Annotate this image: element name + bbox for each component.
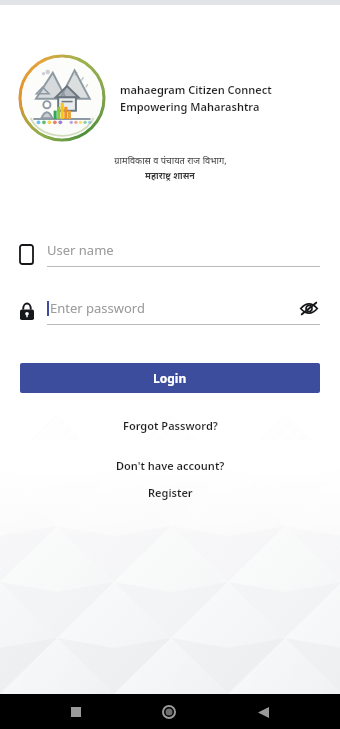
other: Password	[20, 302, 34, 320]
button[interactable]: Login	[20, 363, 320, 393]
button[interactable]: User name	[20, 241, 320, 267]
button[interactable]: Forgot Password?	[111, 414, 230, 437]
button[interactable]: Register	[134, 482, 207, 503]
other: mahaegram logo	[18, 54, 106, 142]
other: User name	[20, 245, 33, 264]
staticText: User name	[47, 241, 114, 259]
staticText: Login	[153, 370, 187, 386]
button[interactable]: Password	[20, 297, 320, 325]
staticText: Don't have account?	[116, 458, 225, 473]
staticText: Forgot Password?	[123, 418, 218, 433]
staticText: ग्रामविकास व पंचायत राज विभाग,	[114, 154, 227, 166]
staticText: mahaegram Citizen Connect	[120, 82, 272, 97]
staticText: Enter password	[50, 299, 145, 317]
button[interactable]: Home	[152, 695, 186, 729]
staticText: Empowering Maharashtra	[120, 99, 260, 114]
button[interactable]: Back	[246, 695, 280, 729]
staticText: Register	[148, 485, 193, 500]
button[interactable]: Recent apps	[59, 695, 93, 729]
button[interactable]: Show password	[298, 297, 320, 319]
staticText: महाराष्ट्र शासन	[145, 169, 195, 181]
